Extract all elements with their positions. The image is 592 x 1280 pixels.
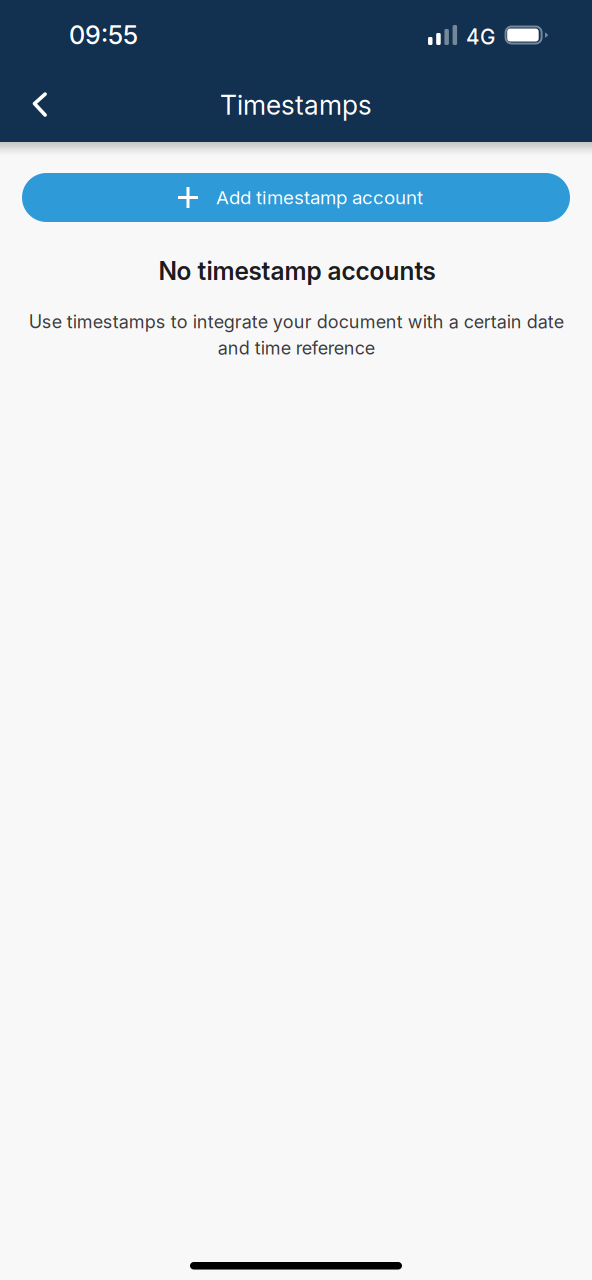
button[interactable]: Add timestamp account [22,173,570,222]
staticText: Use timestamps to integrate your documen… [28,311,563,359]
button[interactable]: Back [13,78,67,132]
staticText: 4G [466,24,495,49]
staticText: 09:55 [69,20,138,50]
staticText: No timestamp accounts [158,256,435,286]
staticText: Add timestamp account [216,186,423,209]
staticText: Timestamps [220,89,372,121]
